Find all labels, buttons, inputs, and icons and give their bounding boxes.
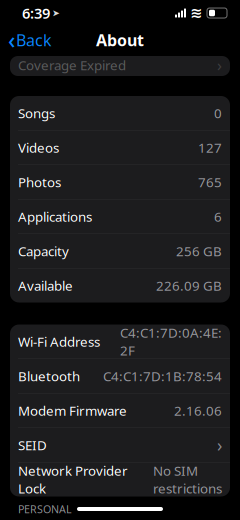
staticText: 127	[198, 139, 222, 156]
button[interactable]: Songs	[10, 96, 230, 130]
staticText: ≋	[190, 5, 202, 21]
staticText: Coverage Expired	[18, 56, 126, 74]
staticText: About	[96, 29, 144, 51]
staticText: ›	[217, 54, 222, 76]
button[interactable]: SEID	[10, 428, 230, 462]
staticText: Capacity	[18, 242, 69, 260]
staticText: 226.09 GB	[156, 277, 222, 294]
staticText: ‹	[8, 25, 15, 55]
staticText: ➤	[52, 8, 60, 18]
button[interactable]: Photos	[10, 165, 230, 199]
staticText: C4:C1:7D:0A:4E:2F	[120, 324, 222, 359]
staticText: Back	[16, 29, 52, 51]
staticText: 256 GB	[176, 242, 222, 260]
button[interactable]: Applications	[10, 199, 230, 233]
staticText: SEID	[18, 436, 47, 454]
staticText: 2.16.06	[174, 402, 222, 419]
staticText: Songs	[18, 104, 55, 122]
button[interactable]: ‹	[2, 28, 58, 52]
staticText: C4:C1:7D:1B:78:54	[103, 367, 222, 385]
button[interactable]: Wi-Fi Address	[10, 324, 230, 358]
staticText: Bluetooth	[18, 367, 80, 385]
staticText: No SIM restrictions	[153, 462, 222, 497]
staticText: 0	[214, 104, 222, 122]
staticText: 6:39	[22, 3, 50, 23]
staticText: 765	[198, 173, 222, 191]
staticText: Network Provider Lock	[18, 462, 128, 497]
button[interactable]: Videos	[10, 130, 230, 164]
staticText: Wi-Fi Address	[18, 333, 100, 350]
button[interactable]: Modem Firmware	[10, 393, 230, 427]
staticText: ›	[217, 433, 222, 456]
staticText: Applications	[18, 208, 92, 225]
staticText: 6	[214, 208, 222, 225]
staticText: Available	[18, 277, 73, 294]
button[interactable]: Available	[10, 268, 230, 302]
staticText: Videos	[18, 139, 59, 156]
staticText: PERSONAL	[18, 502, 72, 516]
button[interactable]: Network Provider Lock	[10, 462, 230, 496]
staticText: Photos	[18, 173, 61, 191]
button[interactable]: Bluetooth	[10, 359, 230, 393]
staticText: Modem Firmware	[18, 402, 127, 419]
button[interactable]: Capacity	[10, 234, 230, 268]
